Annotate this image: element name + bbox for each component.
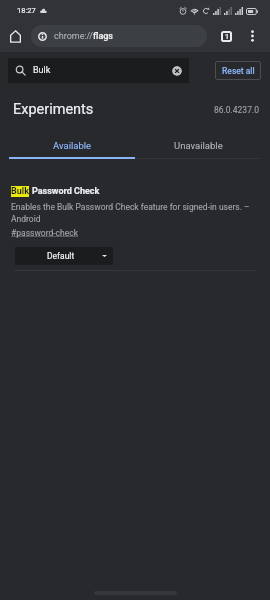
button[interactable]: Reset all <box>215 61 261 80</box>
button[interactable]: Unavailable <box>135 131 261 159</box>
staticText: Bulk <box>33 65 51 76</box>
staticText: Unavailable <box>174 140 223 151</box>
staticText: 18:27 <box>17 6 36 15</box>
button[interactable]: More options <box>241 25 263 47</box>
button[interactable]: Open tabs <box>215 25 238 48</box>
button[interactable]: chrome://flags <box>31 25 207 47</box>
button[interactable]: Bulk <box>0 180 270 265</box>
button[interactable]: Clear search <box>172 66 182 76</box>
staticText: chrome://flags <box>54 31 113 42</box>
staticText: Password Check <box>32 186 100 197</box>
button[interactable]: Bulk <box>8 58 189 83</box>
button[interactable]: Home <box>3 24 27 48</box>
button[interactable]: #password-check <box>11 228 78 238</box>
staticText: Default <box>47 251 75 261</box>
button[interactable]: Available <box>9 131 135 159</box>
staticText: 1 <box>225 33 229 41</box>
staticText: Experiments <box>13 101 94 118</box>
staticText: Reset all <box>222 66 255 76</box>
button[interactable]: Default <box>15 247 113 265</box>
staticText: Available <box>53 140 92 151</box>
staticText: Bulk <box>11 186 29 197</box>
staticText: Enables the Bulk Password Check feature … <box>11 202 258 224</box>
staticText: 86.0.4237.0 <box>214 105 259 115</box>
